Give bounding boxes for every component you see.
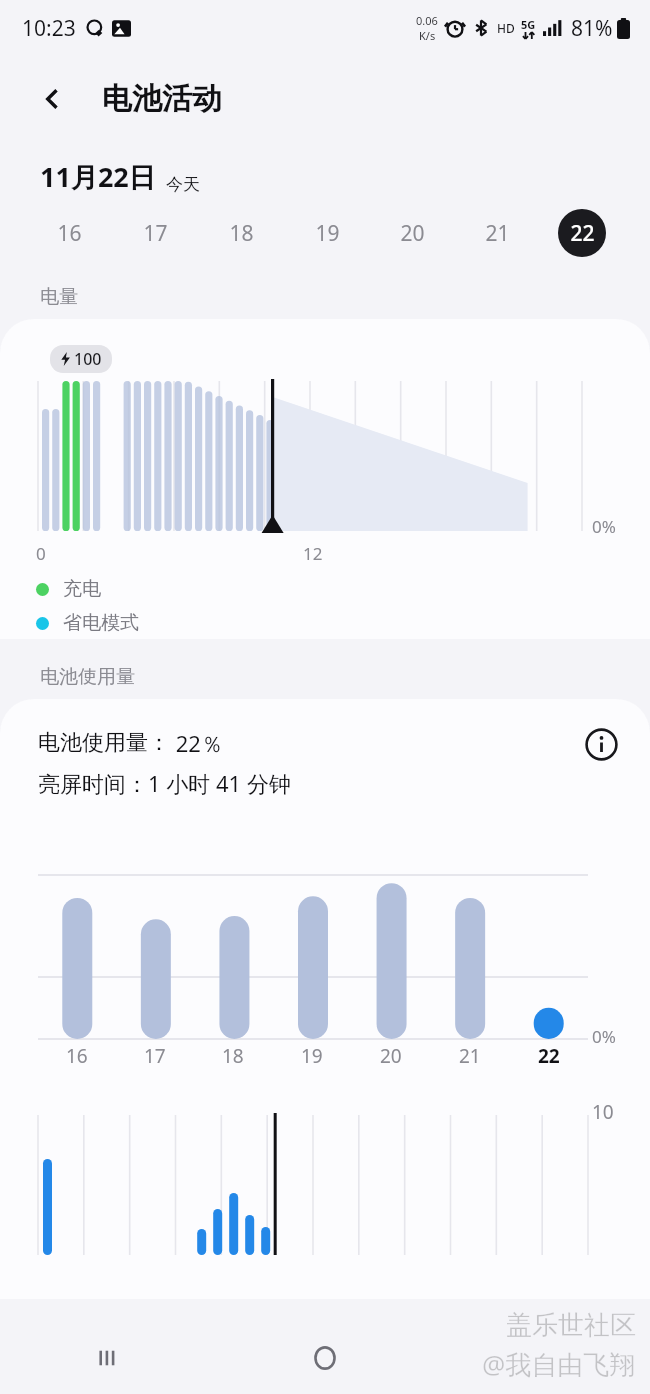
staticText: 0% [592,515,616,538]
button[interactable]: 16 [26,195,112,271]
button[interactable]: Recents [0,1322,216,1394]
button[interactable]: Home [216,1322,433,1394]
staticText: K/s [419,28,436,43]
button[interactable]: Info [578,721,624,767]
staticText: 11月22日 [40,158,156,195]
staticText: 20 [400,219,425,248]
staticText: 0.06 [416,13,438,28]
button[interactable]: 100 [0,319,650,639]
button[interactable]: 21 [454,195,539,271]
staticText: 充电 [63,577,101,601]
staticText: 17 [143,219,168,248]
staticText: 19 [301,1043,323,1069]
staticText: 电量 [40,285,78,309]
staticText: 81% [571,14,613,43]
staticText: 盖乐世社区 [506,1309,636,1342]
staticText: 20 [380,1043,402,1069]
button[interactable]: 22 [539,195,624,271]
staticText: 今天 [166,174,200,195]
button[interactable]: Back [30,76,76,122]
button[interactable]: 18 [198,195,284,271]
staticText: 电池使用量 [40,665,135,689]
staticText: 0 [36,542,46,565]
button[interactable]: 20 [369,195,454,271]
staticText: 21 [485,219,510,248]
staticText: 22％ [170,728,223,758]
staticText: 电池活动 [102,80,222,118]
staticText: 0% [592,1025,616,1048]
staticText: @我自由飞翔 [482,1346,636,1382]
staticText: 16 [66,1043,88,1069]
staticText: 12 [303,542,323,565]
button[interactable]: Back [433,1322,650,1394]
staticText: 5G [521,17,536,32]
staticText: 22 [570,219,595,248]
staticText: 16 [57,219,82,248]
staticText: 100 [74,348,102,370]
staticText: 19 [315,219,340,248]
staticText: 10 [592,1099,614,1125]
button[interactable]: 19 [284,195,369,271]
staticText: HD [497,20,515,36]
staticText: 21 [459,1043,481,1069]
button[interactable]: 17 [112,195,198,271]
staticText: 18 [229,219,254,248]
staticText: 22 [538,1043,560,1069]
staticText: 10:23 [22,14,76,43]
staticText: 省电模式 [63,611,139,635]
staticText: 18 [222,1043,244,1069]
staticText: 亮屏时间：1 小时 41 分钟 [38,768,291,798]
staticText: 17 [144,1043,166,1069]
staticText: 电池使用量： [38,729,170,757]
